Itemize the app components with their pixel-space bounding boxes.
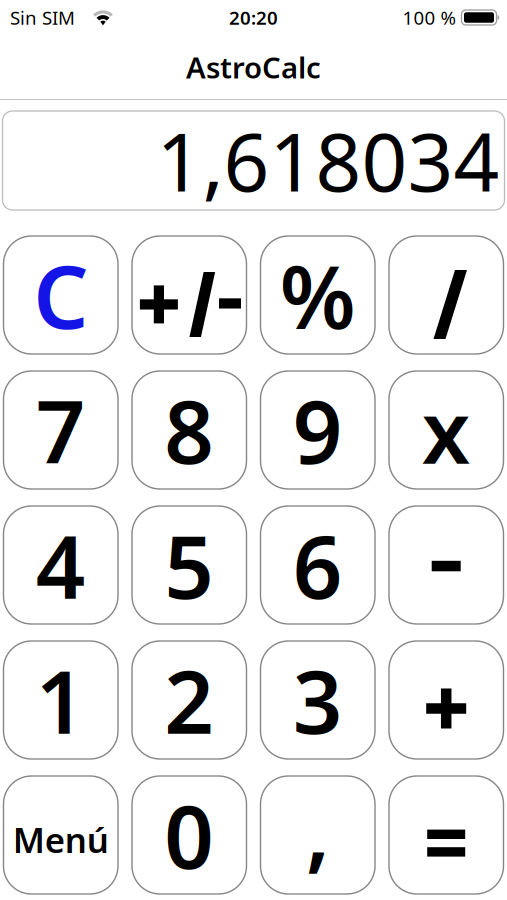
button[interactable]: Menú — [3, 776, 118, 894]
staticText: 7 — [36, 372, 86, 488]
staticText: 2 — [164, 642, 214, 758]
staticText: 9 — [293, 372, 343, 488]
staticText: AstroCalc — [186, 47, 321, 86]
button[interactable]: 2 — [132, 641, 246, 759]
staticText: 20:20 — [229, 5, 278, 30]
staticText: 5 — [164, 507, 214, 623]
staticText: 6 — [293, 507, 343, 623]
button[interactable]: 9 — [260, 371, 375, 489]
button[interactable]: 6 — [260, 506, 375, 624]
staticText: Sin SIM — [10, 5, 75, 30]
button[interactable]: , — [260, 776, 375, 894]
staticText: 8 — [164, 372, 214, 488]
staticText: x — [422, 372, 471, 488]
staticText: 100 % — [402, 5, 456, 30]
button[interactable]: 1 — [3, 641, 118, 759]
button[interactable] — [389, 506, 503, 624]
button[interactable]: 7 — [3, 371, 118, 489]
staticText: , — [306, 771, 330, 887]
button[interactable]: C — [3, 236, 118, 354]
staticText: 3 — [293, 642, 343, 758]
staticText: 1 — [36, 642, 86, 758]
staticText: % — [280, 237, 356, 353]
button[interactable]: % — [260, 236, 375, 354]
staticText: 1,618034 — [156, 107, 499, 214]
staticText: 4 — [36, 507, 86, 623]
staticText: 0 — [164, 777, 214, 893]
button[interactable]: 4 — [3, 506, 118, 624]
button[interactable] — [132, 236, 246, 354]
button[interactable] — [389, 236, 503, 354]
button[interactable]: 0 — [132, 776, 246, 894]
button[interactable] — [389, 776, 503, 894]
button[interactable]: x — [389, 371, 503, 489]
button[interactable]: 5 — [132, 506, 246, 624]
button[interactable]: 3 — [260, 641, 375, 759]
button[interactable] — [389, 641, 503, 759]
staticText: Menú — [13, 816, 109, 862]
button[interactable]: 8 — [132, 371, 246, 489]
staticText: C — [33, 237, 88, 353]
